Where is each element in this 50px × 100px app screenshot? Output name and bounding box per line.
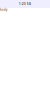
staticText: 5G bbox=[27, 2, 31, 6]
staticText: body bbox=[0, 8, 7, 11]
staticText: 1:23 bbox=[19, 2, 26, 6]
